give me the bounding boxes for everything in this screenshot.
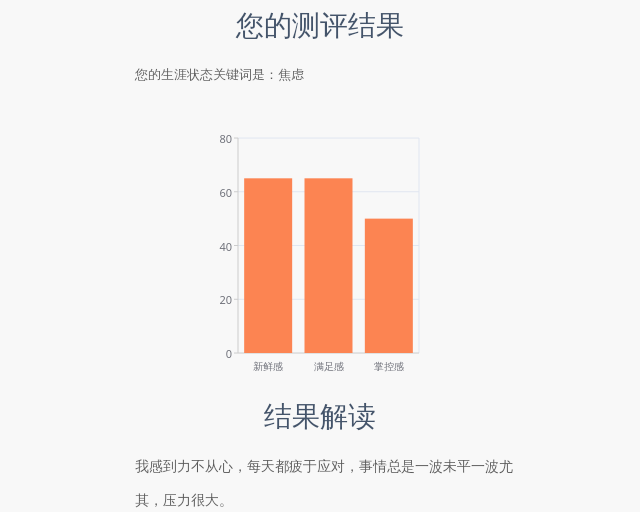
staticText: 您的测评结果 [0, 8, 640, 43]
staticText: 结果解读 [0, 399, 640, 434]
staticText: 40 [219, 239, 232, 253]
button[interactable]: 结果解读 [0, 399, 640, 434]
other: 测评结果柱状图 [210, 125, 430, 375]
staticText: 20 [219, 292, 232, 306]
staticText: 其，压力很大。 [135, 492, 233, 510]
staticText: 掌控感 [374, 360, 404, 373]
staticText: 新鲜感 [253, 360, 283, 373]
staticText: 60 [219, 185, 232, 199]
staticText: 0 [225, 346, 232, 360]
staticText: 我感到力不从心，每天都疲于应对，事情总是一波未平一波尤 [135, 458, 513, 476]
staticText: 80 [219, 131, 232, 145]
staticText: 满足感 [314, 360, 344, 373]
button[interactable]: 您的测评结果 [0, 8, 640, 43]
staticText: 您的生涯状态关键词是：焦虑 [135, 66, 304, 82]
